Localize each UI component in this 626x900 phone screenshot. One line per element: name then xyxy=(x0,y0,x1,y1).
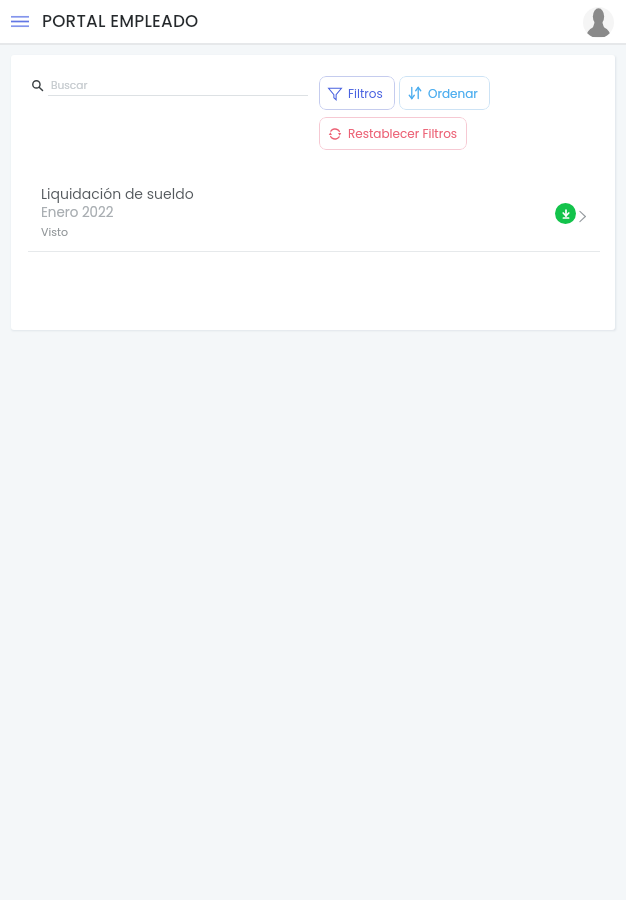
button[interactable] xyxy=(11,180,615,250)
button[interactable]: Filtros xyxy=(319,76,395,110)
staticText: Liquidación de sueldo xyxy=(41,184,194,204)
staticText: Filtros xyxy=(348,85,383,102)
staticText: Visto xyxy=(41,224,68,239)
staticText: Restablecer Filtros xyxy=(348,125,458,142)
button[interactable]: Profile xyxy=(583,7,614,38)
staticText: Buscar xyxy=(51,78,88,93)
staticText: Enero 2022 xyxy=(41,203,114,222)
button[interactable]: Download xyxy=(555,203,576,224)
button[interactable]: Details xyxy=(573,207,592,226)
button[interactable]: Menu xyxy=(6,7,34,35)
staticText: Ordenar xyxy=(428,85,478,102)
button[interactable]: Restablecer Filtros xyxy=(319,117,467,150)
staticText: PORTAL EMPLEADO xyxy=(42,9,199,33)
button[interactable]: Ordenar xyxy=(399,76,490,110)
